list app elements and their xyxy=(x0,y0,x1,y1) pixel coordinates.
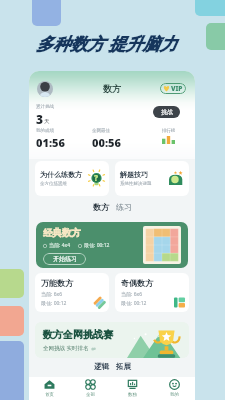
staticText: 最佳: 00:12 xyxy=(121,300,147,307)
staticText: 00:56 xyxy=(92,135,121,150)
staticText: 当前: 4x4 xyxy=(49,242,71,249)
staticText: 当前: 6x6 xyxy=(41,291,63,298)
staticText: 数独 xyxy=(128,392,137,398)
staticText: 全网挑战 实时排名 xyxy=(43,344,89,352)
staticText: 全网最佳 xyxy=(92,128,110,134)
button[interactable]: 我的 xyxy=(153,377,195,400)
button[interactable]: 奇偶数方 xyxy=(115,273,189,312)
button[interactable]: VIP xyxy=(163,83,183,94)
staticText: 系统性解决谜题 xyxy=(120,181,152,187)
button[interactable]: 排行榜 xyxy=(148,128,189,144)
button[interactable]: 为什么练数方 xyxy=(35,161,109,196)
staticText: 当前: 6x6 xyxy=(121,291,143,298)
button[interactable]: Profile xyxy=(37,81,53,97)
staticText: ? xyxy=(94,172,99,183)
staticText: 全部 xyxy=(86,392,95,398)
staticText: 拓展 xyxy=(116,362,131,371)
staticText: 3 xyxy=(36,111,44,127)
staticText: 累计挑战 xyxy=(36,104,54,110)
button[interactable]: 万能数方 xyxy=(35,273,109,312)
staticText: 逻辑 xyxy=(94,362,109,371)
button[interactable]: 经典数方 xyxy=(36,222,188,268)
button[interactable]: 挑战 xyxy=(153,106,180,118)
button[interactable]: 数方 xyxy=(93,202,109,212)
staticText: 我的成绩 xyxy=(36,128,54,134)
staticText: 数方 xyxy=(103,83,121,94)
staticText: 数方全网挑战赛 xyxy=(43,328,113,341)
button[interactable]: 解题技巧 xyxy=(115,161,189,196)
staticText: 01:56 xyxy=(36,135,65,150)
staticText: 万能数方 xyxy=(41,278,73,288)
staticText: 开始练习 xyxy=(53,255,77,263)
staticText: 挑战 xyxy=(161,108,173,116)
button[interactable]: 首页 xyxy=(29,377,70,400)
button[interactable]: 练习 xyxy=(116,202,132,212)
staticText: 奇偶数方 xyxy=(121,278,153,288)
button[interactable]: 开始练习 xyxy=(43,253,86,265)
staticText: 经典数方 xyxy=(43,227,81,239)
staticText: 多种数方 提升脑力 xyxy=(36,32,177,55)
staticText: 排行榜 xyxy=(162,128,176,134)
staticText: 解题技巧 xyxy=(120,170,148,179)
staticText: 全方位练思维 xyxy=(40,181,67,187)
button[interactable]: 数独 xyxy=(111,377,153,400)
staticText: 我的 xyxy=(170,392,179,398)
staticText: 为什么练数方 xyxy=(40,170,82,179)
staticText: 天 xyxy=(44,118,50,125)
staticText: 最佳: 00:12 xyxy=(41,300,67,307)
button[interactable]: 全部 xyxy=(70,377,111,400)
staticText: 最佳: 00:12 xyxy=(84,242,110,249)
staticText: VIP xyxy=(171,84,183,93)
button[interactable]: 数方全网挑战赛 xyxy=(35,322,189,358)
staticText: 首页 xyxy=(45,392,54,398)
